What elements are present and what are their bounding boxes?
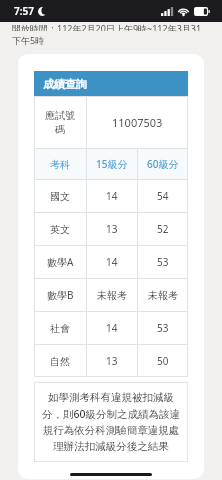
staticText: 52 xyxy=(157,222,169,236)
staticText: 應試號碼 xyxy=(44,109,76,136)
staticText: 下午5時 xyxy=(12,34,45,46)
button[interactable]: 成績查詢 xyxy=(18,54,204,479)
staticText: 英文 xyxy=(50,223,70,236)
staticText: 考科 xyxy=(50,158,70,171)
staticText: 未報考 xyxy=(97,289,127,302)
staticText: 11007503 xyxy=(112,115,163,130)
staticText: 自然 xyxy=(50,355,70,368)
button[interactable]: 成績查詢 xyxy=(34,71,188,96)
staticText: 53 xyxy=(157,321,169,335)
staticText: 開放時間：112年2月20日上午9時~112年3月31日 xyxy=(12,22,210,31)
staticText: 15級分 xyxy=(96,157,128,171)
staticText: 成績查詢 xyxy=(43,77,87,91)
staticText: 54 xyxy=(157,189,169,203)
staticText: 國文 xyxy=(50,190,70,203)
staticText: 數學A xyxy=(47,255,74,269)
staticText: 14 xyxy=(106,255,118,269)
staticText: 數學B xyxy=(47,288,74,302)
staticText: 社會 xyxy=(50,322,70,335)
staticText: 未報考 xyxy=(148,289,178,302)
staticText: 50 xyxy=(157,354,169,368)
staticText: 13 xyxy=(106,354,118,368)
staticText: 14 xyxy=(106,321,118,335)
staticText: 13 xyxy=(106,222,118,236)
staticText: 如學測考科有違規被扣減級分，則60級分制之成績為該違規行為依分科測驗簡章違規處理… xyxy=(38,391,184,453)
staticText: 7:57 xyxy=(14,4,34,18)
staticText: 14 xyxy=(106,189,118,203)
staticText: 60級分 xyxy=(147,157,179,171)
staticText: 53 xyxy=(157,255,169,269)
